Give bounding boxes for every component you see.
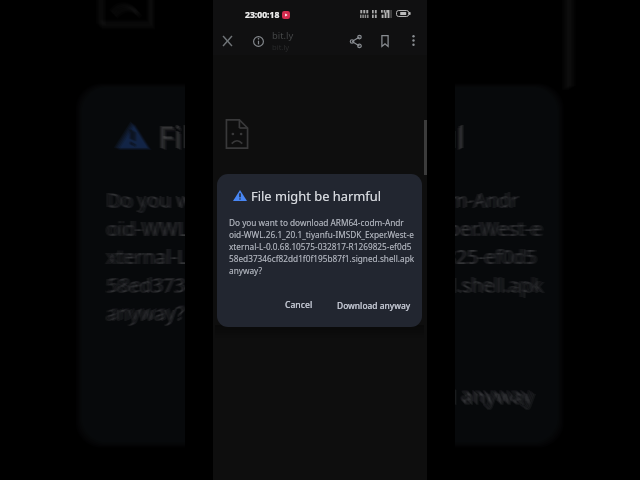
staticText: File might be harmful [158, 115, 468, 158]
staticText: Download anyway [361, 381, 535, 407]
staticText: Do you want to download ARM64-codm-Andr … [110, 187, 541, 324]
staticText: Download anyway [360, 380, 532, 405]
button[interactable]: Download anyway [329, 295, 419, 316]
staticText: Download anyway [361, 382, 536, 408]
staticText: bit.ly [272, 29, 294, 42]
button[interactable]: Close [216, 30, 238, 52]
button[interactable]: Download anyway [342, 371, 555, 420]
staticText: Download anyway [337, 300, 411, 311]
button[interactable]: Download anyway [342, 370, 554, 419]
staticText: File might be harmful [161, 118, 465, 159]
staticText: Cancel [285, 299, 313, 311]
staticText: bit.ly [272, 42, 290, 52]
button[interactable]: More options [403, 30, 423, 50]
button[interactable]: Cancel [277, 294, 321, 316]
staticText: Do you want to download ARM64-codm-Andr … [106, 186, 546, 326]
staticText: Download anyway [361, 381, 533, 406]
staticText: Download anyway [361, 383, 538, 410]
staticText: File might be harmful [157, 114, 469, 157]
staticText: 23:00:18 [245, 9, 280, 21]
button[interactable]: Bookmark [374, 30, 396, 52]
button[interactable]: Download anyway [342, 369, 552, 418]
staticText: Do you want to download ARM64-codm-Andr … [229, 217, 415, 276]
staticText: Do you want to download ARM64-codm-Andr … [104, 186, 547, 326]
button[interactable]: Download anyway [342, 371, 557, 421]
staticText: File might be harmful [160, 117, 466, 159]
staticText: File might be harmful [159, 116, 467, 158]
button[interactable]: Share [345, 30, 367, 52]
staticText: File might be harmful [251, 187, 382, 205]
button[interactable]: Download anyway [342, 368, 551, 417]
button[interactable]: Site information [247, 30, 269, 52]
staticText: Do you want to download ARM64-codm-Andr … [108, 187, 543, 324]
staticText: Do you want to download ARM64-codm-Andr … [107, 186, 544, 325]
